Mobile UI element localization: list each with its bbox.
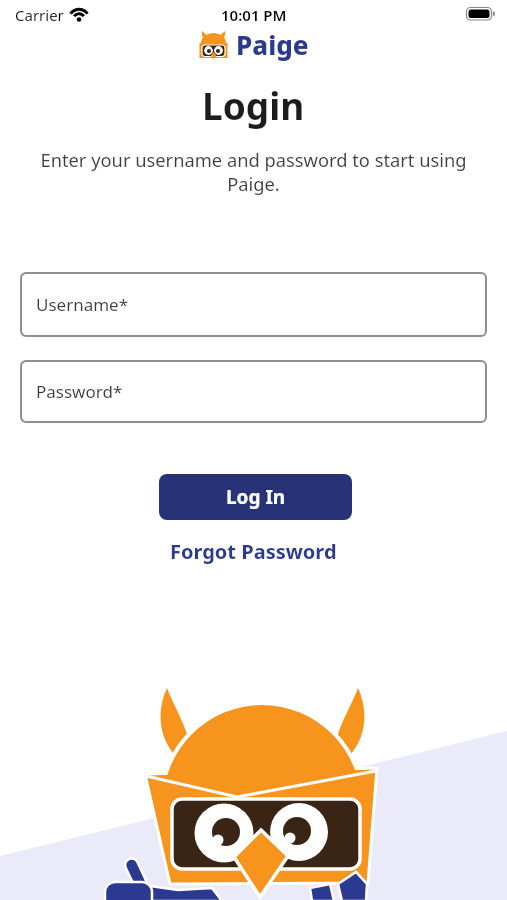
staticText: Username* [36, 293, 129, 316]
button[interactable]: Forgot Password [170, 538, 337, 565]
staticText: 10:01 PM [221, 5, 287, 25]
staticText: Login [202, 80, 305, 130]
staticText: Enter your username and password to star… [0, 147, 507, 196]
staticText: Log In [226, 484, 286, 510]
button[interactable]: Username* [20, 272, 487, 337]
staticText: Password* [36, 380, 123, 403]
staticText: Forgot Password [170, 538, 337, 565]
staticText: Paige [236, 27, 309, 62]
button[interactable]: Paige [198, 27, 309, 62]
button[interactable]: Password* [20, 360, 487, 423]
button[interactable]: Log In [159, 474, 352, 520]
staticText: Carrier [15, 5, 64, 25]
